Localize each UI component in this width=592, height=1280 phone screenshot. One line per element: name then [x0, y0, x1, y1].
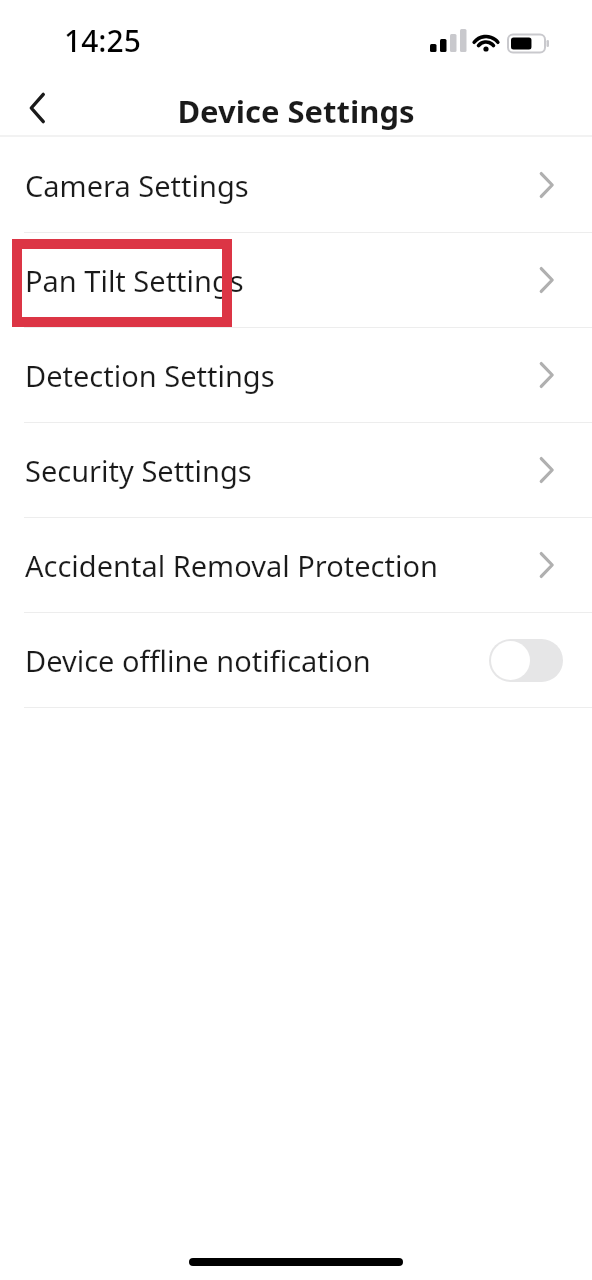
staticText: Detection Settings: [25, 356, 275, 395]
button[interactable]: Accidental Removal Protection: [0, 518, 592, 612]
staticText: Device Settings: [0, 90, 592, 132]
staticText: Device offline notification: [25, 641, 371, 680]
button[interactable]: Back: [8, 78, 68, 137]
staticText: 14:25: [64, 20, 141, 61]
staticText: Security Settings: [25, 451, 252, 490]
button[interactable]: Pan Tilt Settings: [0, 233, 592, 327]
button[interactable]: Security Settings: [0, 423, 592, 517]
staticText: Pan Tilt Settings: [25, 261, 244, 300]
staticText: Camera Settings: [25, 166, 249, 205]
button[interactable]: Camera Settings: [0, 138, 592, 232]
staticText: Accidental Removal Protection: [25, 546, 438, 585]
button[interactable]: Device offline notification toggle: [489, 639, 563, 682]
button[interactable]: Device offline notification: [0, 613, 592, 707]
button[interactable]: Detection Settings: [0, 328, 592, 422]
